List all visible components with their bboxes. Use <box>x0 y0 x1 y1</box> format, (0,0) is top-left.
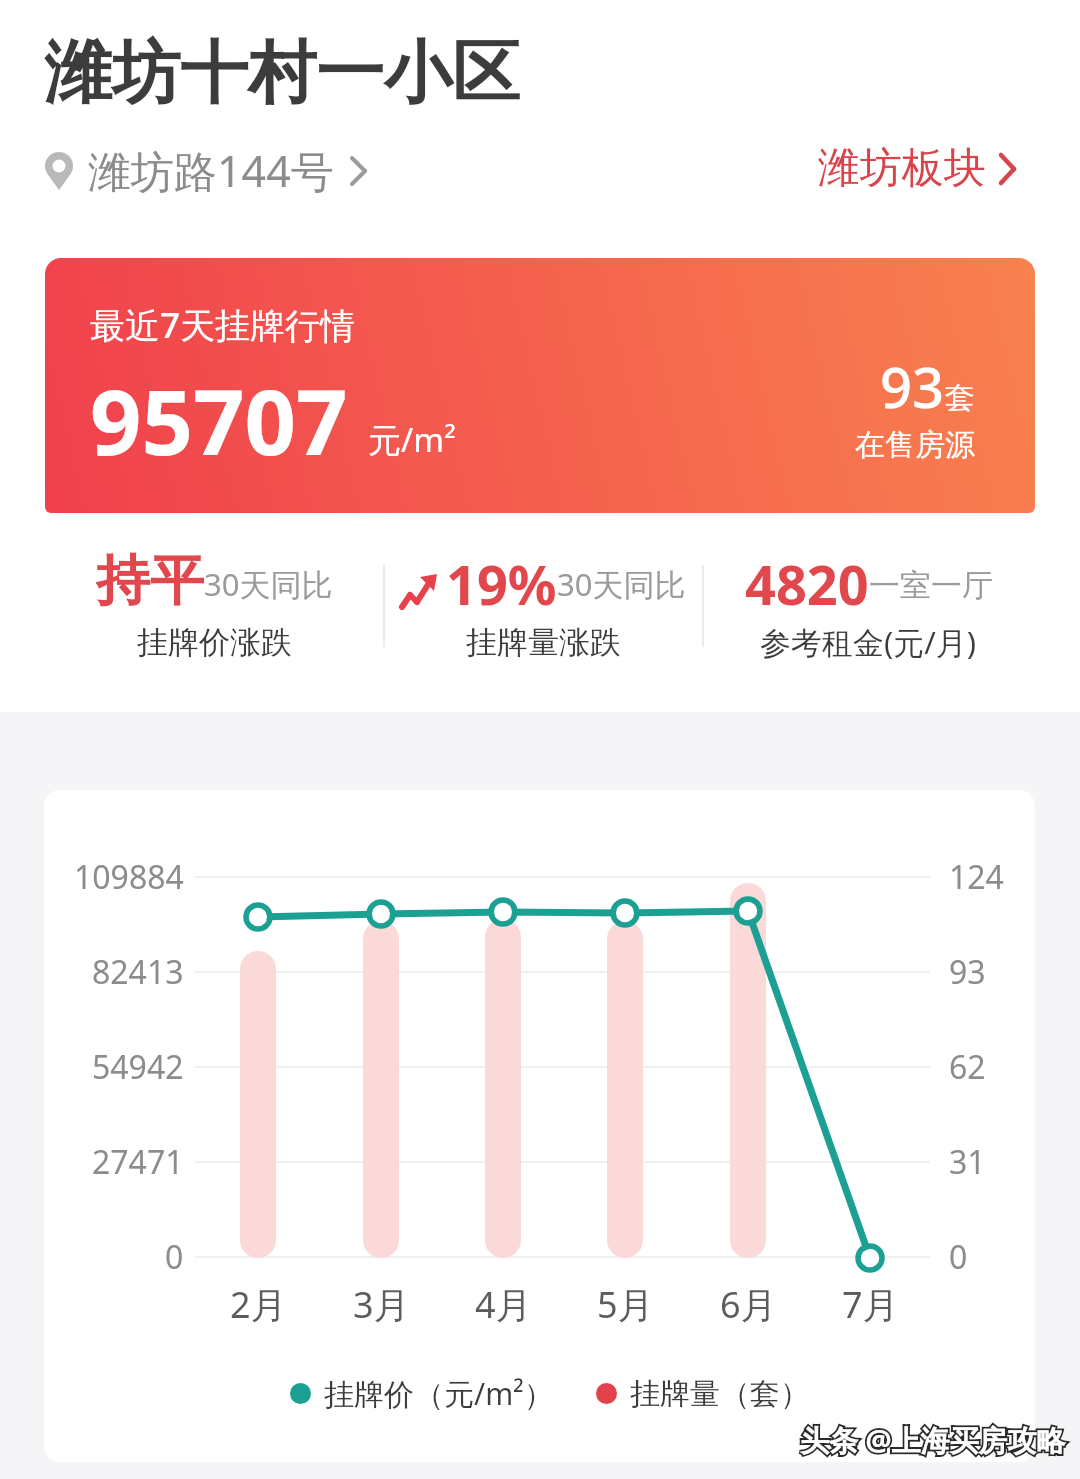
staticText: 4月 <box>475 1280 532 1329</box>
staticText: 30天同比 <box>557 563 686 605</box>
button[interactable]: 潍坊板块 <box>818 142 1018 195</box>
staticText: 5月 <box>597 1280 654 1329</box>
staticText: 挂牌量（套） <box>630 1375 810 1413</box>
staticText: 头条 @上海买房攻略 <box>800 1420 1066 1460</box>
staticText: 27471 <box>92 1140 184 1184</box>
staticText: 3月 <box>353 1280 410 1329</box>
staticText: 头条 @上海买房攻略 <box>800 1420 1066 1460</box>
staticText: 62 <box>949 1045 986 1089</box>
staticText: 潍坊板块 <box>818 142 986 195</box>
staticText: 30天同比 <box>204 563 333 605</box>
staticText: 93 <box>880 348 945 424</box>
staticText: 19% <box>446 547 557 613</box>
staticText: 参考租金(元/月) <box>760 621 977 663</box>
staticText: 一室一厅 <box>869 566 993 605</box>
staticText: 挂牌量涨跌 <box>466 623 621 662</box>
staticText: 93 <box>949 950 986 994</box>
staticText: 在售房源 <box>855 426 975 464</box>
button[interactable]: 潍坊路144号 <box>44 141 368 200</box>
staticText: 54942 <box>92 1045 184 1089</box>
button[interactable]: 持平 <box>45 547 384 613</box>
staticText: 109884 <box>74 855 184 899</box>
staticText: 套 <box>945 379 975 417</box>
button[interactable]: 19% <box>384 547 702 613</box>
staticText: 0 <box>165 1235 184 1279</box>
staticText: 4820 <box>745 547 869 613</box>
staticText: 2月 <box>230 1280 287 1329</box>
staticText: 6月 <box>720 1280 777 1329</box>
staticText: 124 <box>949 855 1004 899</box>
staticText: 95707 <box>90 359 348 482</box>
staticText: 7月 <box>842 1280 899 1329</box>
staticText: 挂牌价（元/m²） <box>324 1373 554 1414</box>
button[interactable]: 4820 <box>702 547 1035 613</box>
staticText: 潍坊路144号 <box>88 141 334 200</box>
staticText: 31 <box>949 1140 986 1184</box>
staticText: 最近7天挂牌行情 <box>90 301 356 349</box>
button[interactable]: 最近7天挂牌行情 <box>45 258 1035 513</box>
staticText: 挂牌价涨跌 <box>137 623 292 662</box>
staticText: 持平 <box>96 547 204 613</box>
staticText: 潍坊十村一小区 <box>44 31 520 117</box>
staticText: 82413 <box>92 950 184 994</box>
staticText: 0 <box>949 1235 968 1279</box>
staticText: 元/m² <box>368 417 456 462</box>
